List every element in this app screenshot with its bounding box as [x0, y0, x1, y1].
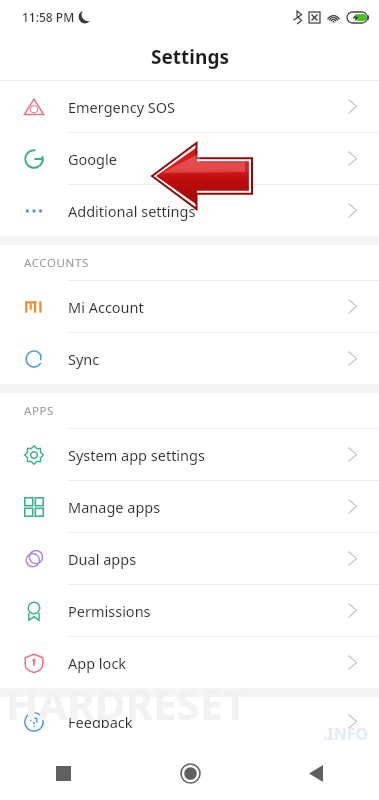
staticText: .INFO: [323, 723, 369, 745]
button[interactable]: Google: [0, 133, 379, 184]
button[interactable]: Sync: [0, 333, 379, 384]
button[interactable]: Home: [127, 746, 253, 800]
button[interactable]: Additional settings: [0, 185, 379, 236]
staticText: System app settings: [68, 445, 348, 465]
button[interactable]: Recent apps: [0, 746, 127, 800]
staticText: 11:58 PM: [22, 9, 75, 25]
staticText: APPS: [24, 403, 54, 419]
button[interactable]: Dual apps: [0, 533, 379, 584]
staticText: Additional settings: [68, 201, 348, 221]
staticText: App lock: [68, 653, 348, 673]
button[interactable]: Back: [253, 746, 379, 800]
button[interactable]: Feedback: [0, 697, 379, 746]
button[interactable]: App lock: [0, 637, 379, 688]
staticText: Mi Account: [68, 297, 348, 317]
button[interactable]: Emergency SOS: [0, 81, 379, 132]
button[interactable]: Manage apps: [0, 481, 379, 532]
button[interactable]: System app settings: [0, 429, 379, 480]
staticText: Feedback: [68, 712, 348, 732]
staticText: ACCOUNTS: [24, 255, 89, 271]
button[interactable]: Mi Account: [0, 281, 379, 332]
staticText: Emergency SOS: [68, 97, 348, 117]
staticText: Manage apps: [68, 497, 348, 517]
staticText: Google: [68, 149, 348, 169]
staticText: Sync: [68, 349, 348, 369]
staticText: Dual apps: [68, 549, 348, 569]
staticText: HARDRESET: [6, 675, 248, 732]
staticText: Permissions: [68, 601, 348, 621]
button[interactable]: Permissions: [0, 585, 379, 636]
staticText: Settings: [151, 44, 229, 70]
